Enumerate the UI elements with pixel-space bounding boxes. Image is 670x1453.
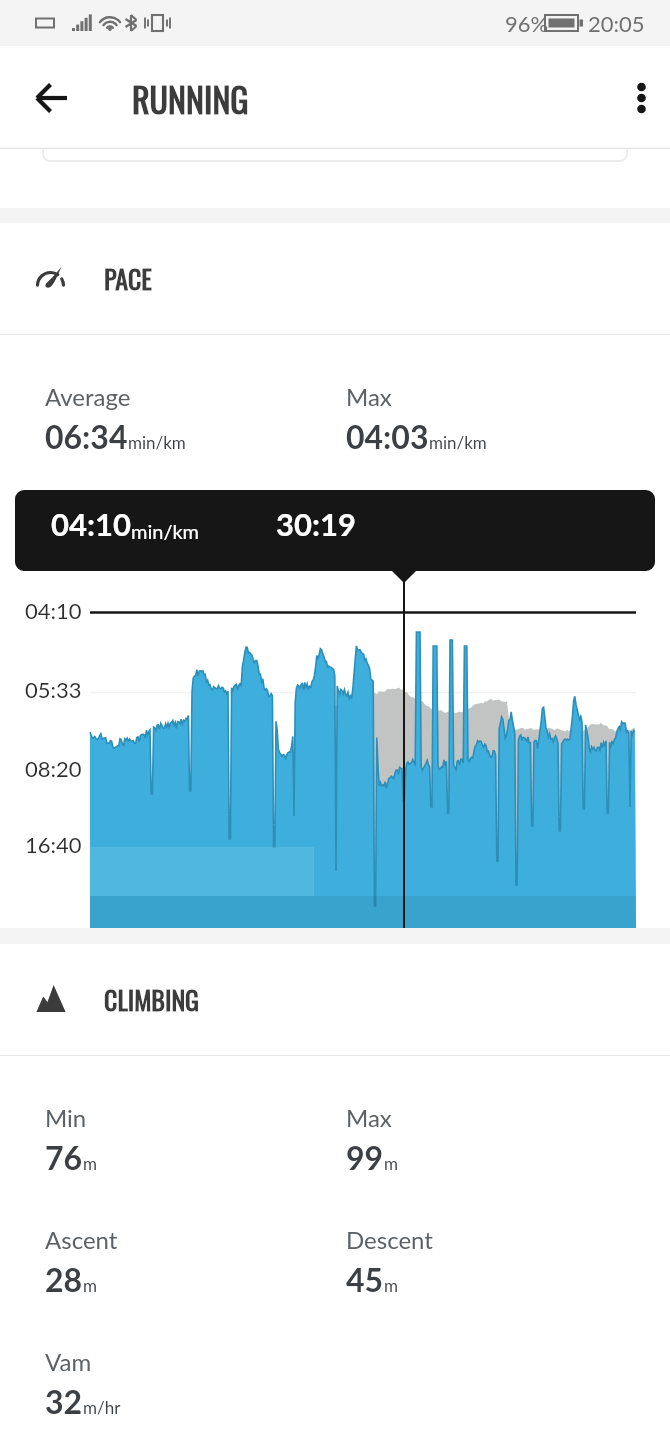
- staticText: m/hr: [83, 1397, 121, 1417]
- staticText: 04:10: [25, 597, 82, 623]
- staticText: 76: [45, 1138, 83, 1176]
- staticText: Min: [45, 1103, 87, 1132]
- button[interactable]: PACE: [0, 223, 670, 334]
- button[interactable]: Vam: [45, 1300, 346, 1420]
- button[interactable]: Max: [346, 335, 626, 455]
- staticText: m: [83, 1275, 97, 1295]
- staticText: Max: [346, 1103, 392, 1132]
- staticText: 05:33: [25, 676, 82, 702]
- button[interactable]: Max: [346, 1056, 626, 1176]
- staticText: Average: [45, 382, 131, 411]
- button[interactable]: Min: [45, 1056, 346, 1176]
- staticText: min/km: [131, 519, 200, 543]
- staticText: Ascent: [45, 1225, 118, 1254]
- staticText: PACE: [104, 259, 152, 298]
- staticText: 30:19: [276, 505, 356, 542]
- staticText: 28: [45, 1260, 83, 1298]
- button[interactable]: Ascent: [45, 1178, 346, 1298]
- staticText: m: [384, 1275, 398, 1295]
- staticText: min/km: [128, 432, 186, 452]
- staticText: m: [384, 1153, 398, 1173]
- staticText: CLIMBING: [104, 980, 200, 1019]
- staticText: 32: [45, 1382, 83, 1420]
- staticText: 45: [346, 1260, 384, 1298]
- staticText: 04:10: [51, 505, 131, 542]
- staticText: 20:05: [588, 10, 645, 36]
- staticText: 04:03: [346, 417, 429, 455]
- staticText: Max: [346, 382, 392, 411]
- staticText: min/km: [429, 432, 487, 452]
- staticText: 99: [346, 1138, 384, 1176]
- staticText: RUNNING: [132, 73, 249, 123]
- staticText: Descent: [346, 1225, 433, 1254]
- staticText: 96%: [505, 10, 549, 36]
- button[interactable]: Descent: [346, 1178, 626, 1298]
- staticText: 06:34: [45, 417, 128, 455]
- button[interactable]: Back: [18, 64, 86, 132]
- button[interactable]: CLIMBING: [0, 944, 670, 1055]
- staticText: 16:40: [25, 831, 82, 857]
- button[interactable]: More options: [606, 66, 670, 130]
- staticText: 08:20: [25, 755, 82, 781]
- button[interactable]: Average: [45, 335, 346, 455]
- staticText: Vam: [45, 1347, 92, 1376]
- staticText: m: [83, 1153, 97, 1173]
